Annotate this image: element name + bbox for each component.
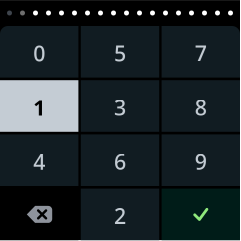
- staticText: 0: [33, 39, 45, 67]
- button[interactable]: 6: [81, 134, 159, 186]
- button[interactable]: 3: [81, 80, 159, 132]
- button[interactable]: 4: [0, 134, 78, 186]
- staticText: 4: [33, 147, 45, 176]
- button[interactable]: Delete: [0, 189, 78, 240]
- staticText: 1: [33, 93, 45, 121]
- button[interactable]: 5: [81, 26, 159, 78]
- button[interactable]: 2: [81, 189, 159, 240]
- button[interactable]: Confirm: [162, 189, 240, 240]
- button[interactable]: 7: [162, 26, 240, 78]
- staticText: 3: [114, 93, 126, 121]
- button[interactable]: 9: [162, 134, 240, 186]
- staticText: 2: [114, 201, 126, 230]
- button[interactable]: 1: [0, 80, 78, 132]
- staticText: 6: [114, 147, 126, 176]
- staticText: 8: [195, 93, 207, 121]
- staticText: 7: [195, 39, 207, 67]
- staticText: 9: [195, 147, 207, 176]
- button[interactable]: 0: [0, 26, 78, 78]
- button[interactable]: 8: [162, 80, 240, 132]
- staticText: 5: [114, 39, 126, 67]
